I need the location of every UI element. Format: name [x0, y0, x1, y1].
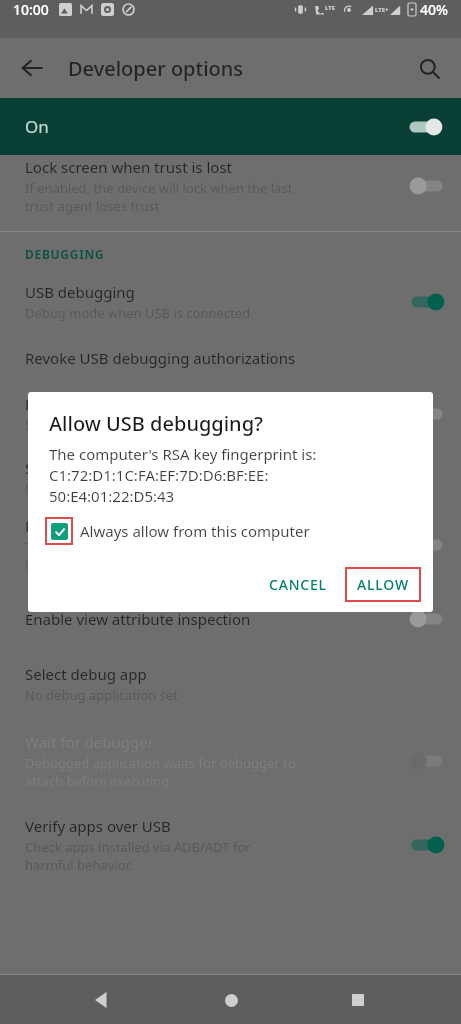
- staticText: Check apps installed via ADB/ADT for har…: [25, 838, 251, 874]
- staticText: CANCEL: [269, 575, 327, 594]
- staticText: Track all GNSS constellations and freque…: [25, 538, 227, 574]
- staticText: Debug mode when USB is connected: [25, 304, 251, 322]
- staticText: Bug report shortcut: [25, 394, 165, 414]
- button[interactable]: [405, 604, 449, 634]
- staticText: The computer's RSA key fingerprint is: C…: [49, 444, 317, 507]
- staticText: Force full GNSS measurements: [25, 516, 243, 536]
- button[interactable]: [405, 830, 449, 860]
- button[interactable]: Back: [8, 44, 56, 92]
- button[interactable]: Bug report shortcut: [0, 382, 461, 446]
- staticText: Wait for debugger: [25, 732, 154, 752]
- button[interactable]: USB debugging: [0, 276, 461, 334]
- staticText: 10:00: [13, 0, 49, 19]
- staticText: On: [25, 115, 49, 138]
- button[interactable]: Revoke USB debugging authorizations: [0, 334, 461, 382]
- staticText: Lock screen when trust is lost: [25, 157, 232, 177]
- staticText: If enabled, the device will lock when th…: [25, 179, 293, 215]
- button[interactable]: Select debug app: [0, 650, 461, 718]
- staticText: No mock location app set: [25, 480, 180, 498]
- button[interactable]: [405, 746, 449, 776]
- button[interactable]: Recent apps: [334, 976, 382, 1024]
- button[interactable]: On: [0, 98, 461, 155]
- staticText: Allow USB debugging?: [49, 410, 263, 437]
- button[interactable]: Back: [79, 976, 127, 1024]
- button[interactable]: Search: [405, 44, 453, 92]
- button[interactable]: CANCEL: [257, 567, 339, 602]
- button[interactable]: [405, 530, 449, 560]
- button[interactable]: [405, 399, 449, 429]
- staticText: Show a button in the power menu: [25, 416, 233, 434]
- button[interactable]: ALLOW: [345, 567, 421, 602]
- staticText: LTE: [325, 4, 336, 12]
- staticText: Always allow from this computer: [80, 521, 310, 541]
- staticText: Select debug app: [25, 664, 147, 684]
- button[interactable]: Home: [207, 976, 255, 1024]
- button[interactable]: Always allow from this computer: [45, 517, 310, 545]
- button[interactable]: Force full GNSS measurements: [0, 510, 461, 588]
- staticText: Revoke USB debugging authorizations: [25, 348, 296, 368]
- staticText: Enable view attribute inspection: [25, 609, 251, 629]
- staticText: No debug application set: [25, 686, 178, 704]
- staticText: DEBUGGING: [25, 246, 105, 262]
- staticText: 40%: [420, 0, 448, 19]
- staticText: Select mock location app: [25, 458, 200, 478]
- button[interactable]: [405, 171, 449, 201]
- button[interactable]: [405, 287, 449, 317]
- staticText: Developer options: [68, 55, 244, 82]
- staticText: Debugged application waits for debugger …: [25, 754, 296, 790]
- staticText: USB debugging: [25, 282, 135, 302]
- button[interactable]: Select mock location app: [0, 446, 461, 510]
- button[interactable]: [403, 112, 447, 142]
- button[interactable]: Verify apps over USB: [0, 804, 461, 884]
- staticText: ALLOW: [357, 575, 409, 594]
- button[interactable]: Lock screen when trust is lost: [0, 155, 461, 231]
- button[interactable]: Enable view attribute inspection: [0, 588, 461, 650]
- staticText: Verify apps over USB: [25, 816, 171, 836]
- staticText: LTE+: [375, 6, 389, 14]
